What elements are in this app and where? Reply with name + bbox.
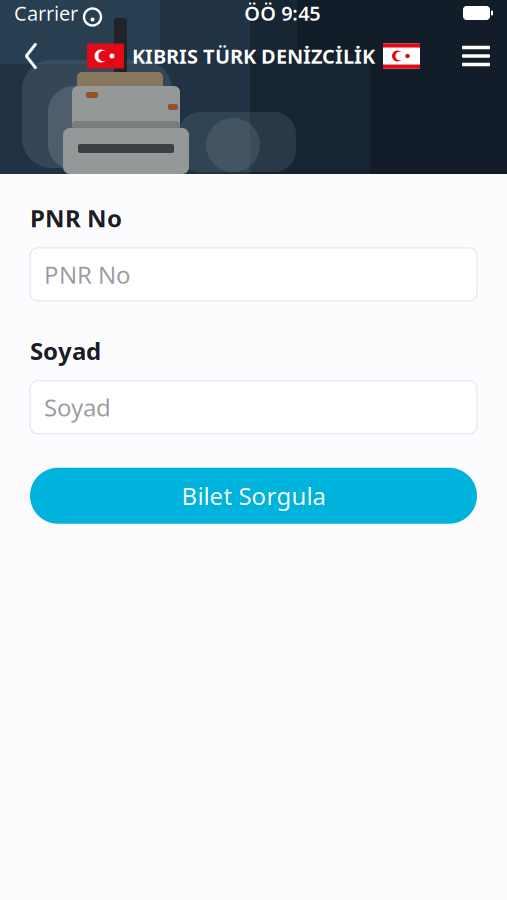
staticText: PNR No: [30, 202, 122, 234]
staticText: KIBRIS TÜRK DENİZCİLİK: [132, 43, 375, 69]
staticText: Carrier: [14, 0, 78, 26]
button[interactable]: Bilet Sorgula: [30, 468, 477, 524]
button[interactable]: PNR No: [30, 248, 477, 301]
button[interactable]: Geri: [8, 33, 54, 79]
staticText: PNR No: [44, 258, 131, 290]
button[interactable]: Soyad: [30, 381, 477, 434]
staticText: Soyad: [44, 391, 111, 423]
staticText: Bilet Sorgula: [181, 480, 325, 512]
staticText: Soyad: [30, 335, 101, 367]
button[interactable]: Menü: [453, 33, 499, 79]
staticText: ÖÖ 9:45: [244, 0, 320, 26]
